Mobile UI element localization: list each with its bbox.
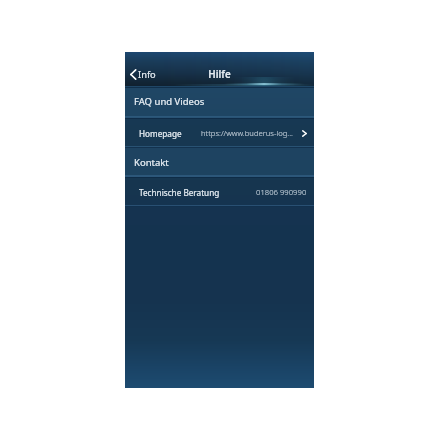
staticText: 01806 990990 (256, 187, 307, 197)
staticText: Hilfe (125, 68, 314, 81)
button[interactable]: Homepage (125, 118, 314, 148)
button[interactable]: Back (127, 66, 159, 83)
staticText: Info (138, 68, 156, 81)
staticText: Kontakt (134, 156, 169, 169)
staticText: Technische Beratung (139, 187, 220, 198)
button[interactable]: Technische Beratung (125, 177, 314, 207)
staticText: Homepage (139, 128, 182, 139)
other: Back (130, 69, 136, 80)
staticText: https://www.buderus-log... (201, 128, 293, 138)
staticText: FAQ und Videos (134, 95, 205, 108)
